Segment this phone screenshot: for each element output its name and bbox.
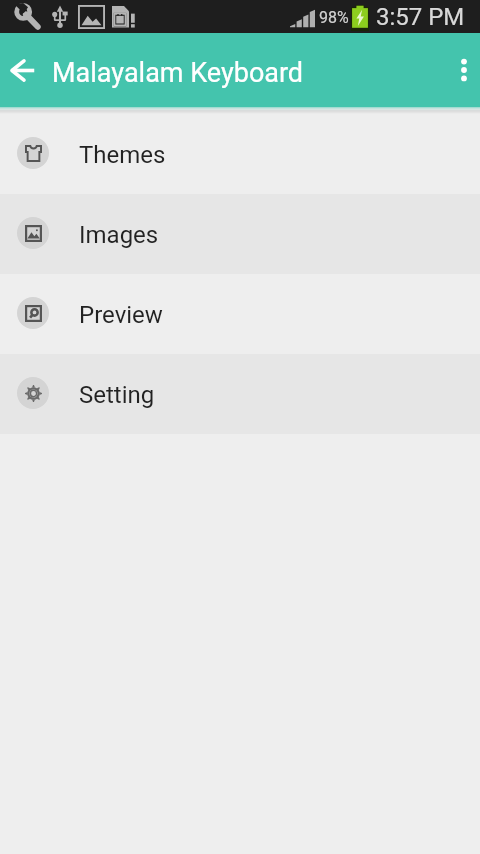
button[interactable]: Setting — [0, 354, 480, 434]
staticText: Themes — [79, 141, 166, 169]
button[interactable]: Back — [10, 59, 35, 82]
button[interactable]: Preview — [0, 274, 480, 354]
button[interactable]: More options — [449, 55, 479, 85]
staticText: Preview — [79, 301, 163, 329]
staticText: Images — [79, 221, 159, 249]
button[interactable]: Themes — [0, 114, 480, 194]
staticText: 98% — [319, 8, 349, 27]
staticText: Malayalam Keyboard — [52, 57, 304, 89]
staticText: Setting — [79, 381, 155, 409]
staticText: 3:57 PM — [376, 3, 465, 31]
button[interactable]: Images — [0, 194, 480, 274]
